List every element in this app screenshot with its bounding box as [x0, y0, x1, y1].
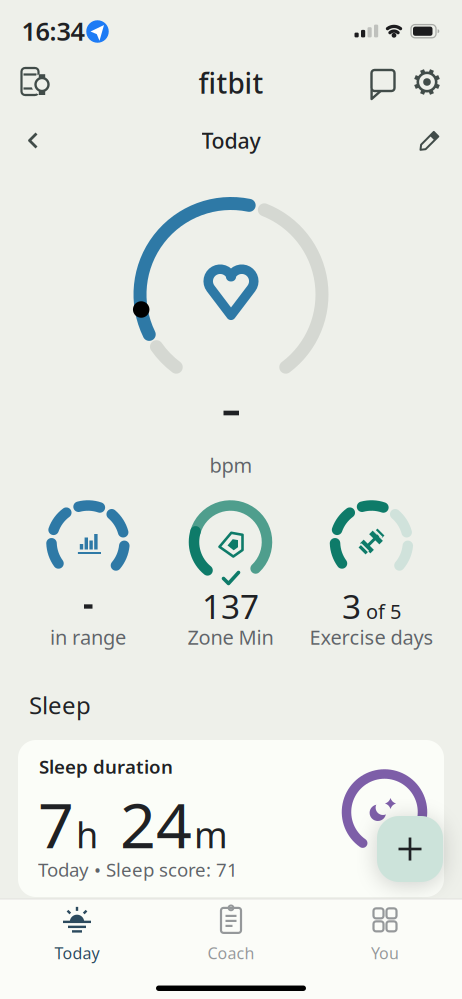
- staticText: 24: [120, 782, 192, 866]
- staticText: Today: [201, 126, 260, 155]
- staticText: h: [76, 810, 98, 858]
- button[interactable]: Today: [17, 898, 137, 970]
- staticText: Coach: [207, 942, 254, 964]
- button[interactable]: Coach: [171, 898, 291, 970]
- staticText: Today: [54, 942, 99, 964]
- staticText: of 5: [366, 598, 401, 624]
- staticText: 16:34: [21, 14, 84, 48]
- button[interactable]: Back: [21, 128, 45, 152]
- staticText: in range: [50, 624, 126, 650]
- button[interactable]: You: [325, 898, 445, 970]
- button[interactable]: Settings: [409, 64, 445, 100]
- staticText: Sleep duration: [39, 754, 173, 779]
- staticText: bpm: [209, 452, 252, 478]
- staticText: 3: [342, 584, 361, 628]
- button[interactable]: Add: [377, 816, 443, 882]
- staticText: Zone Min: [187, 624, 273, 650]
- staticText: fitbit: [198, 64, 263, 102]
- staticText: Sleep: [29, 689, 91, 721]
- button[interactable]: Messages: [365, 64, 401, 100]
- staticText: You: [371, 942, 399, 964]
- button[interactable]: Edit: [416, 128, 442, 154]
- button[interactable]: Devices: [17, 64, 53, 100]
- staticText: Today • Sleep score: 71: [38, 857, 238, 882]
- staticText: 7: [38, 782, 74, 866]
- staticText: m: [194, 810, 228, 858]
- staticText: Exercise days: [309, 624, 433, 650]
- staticText: 137: [202, 584, 259, 628]
